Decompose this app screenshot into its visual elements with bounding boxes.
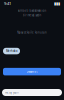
staticText: Sohbeti baslatmak icin <box>17 9 46 12</box>
staticText: 9:41 <box>4 1 11 6</box>
staticText: Devam et <box>26 70 37 73</box>
staticText: Mesaj yazin <box>5 91 19 94</box>
staticText: Merhaba <box>6 49 17 53</box>
button[interactable]: Devam et <box>3 68 61 75</box>
staticText: bir mesaj yazin <box>22 13 41 17</box>
staticText: Yapay zeka ile konusun <box>17 31 47 34</box>
staticText: ▮▮▮ <box>54 1 60 6</box>
